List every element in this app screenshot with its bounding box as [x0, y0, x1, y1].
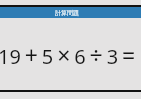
staticText: 19 + 5 × 6 ÷ 3 =: [0, 39, 136, 70]
staticText: 計算問題: [55, 9, 79, 17]
button[interactable]: 計算問題: [0, 7, 141, 18]
